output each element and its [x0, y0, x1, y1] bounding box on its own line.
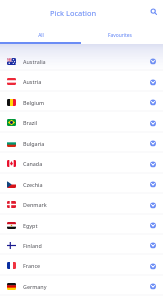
staticText: Germany [23, 283, 47, 290]
button[interactable]: Brazil [0, 112, 163, 133]
button[interactable]: Egypt [0, 215, 163, 235]
button[interactable]: Expand Bulgaria [149, 139, 157, 147]
button[interactable]: France [0, 255, 163, 276]
button[interactable]: Denmark [0, 194, 163, 215]
button[interactable]: Expand Brazil [149, 119, 157, 127]
staticText: All [38, 32, 44, 39]
button[interactable]: Expand France [149, 262, 157, 270]
button[interactable]: Expand Finland [149, 241, 157, 249]
button[interactable]: Favourites [81, 26, 163, 42]
staticText: Australia [23, 58, 46, 65]
staticText: Canada [23, 160, 43, 167]
button[interactable]: Expand Egypt [149, 221, 157, 229]
button[interactable]: Expand Denmark [149, 201, 157, 209]
button[interactable]: Expand Czechia [149, 180, 157, 188]
staticText: Austria [23, 78, 42, 85]
button[interactable]: Belgium [0, 92, 163, 112]
button[interactable]: Austria [0, 71, 163, 92]
staticText: France [23, 262, 41, 269]
button[interactable]: Expand Austria [149, 78, 157, 86]
button[interactable]: Australia [0, 51, 163, 71]
button[interactable]: Finland [0, 235, 163, 255]
staticText: Denmark [23, 201, 47, 208]
staticText: Favourites [108, 32, 132, 39]
staticText: Pick Location [50, 8, 97, 18]
staticText: Finland [23, 242, 42, 249]
button[interactable]: Canada [0, 153, 163, 174]
staticText: Bulgaria [23, 140, 45, 147]
staticText: Egypt [23, 222, 38, 229]
staticText: Brazil [23, 119, 38, 126]
staticText: Belgium [23, 99, 45, 106]
button[interactable]: Germany [0, 276, 163, 296]
button[interactable]: Search [147, 6, 161, 20]
button[interactable]: Expand Australia [149, 57, 157, 65]
staticText: Czechia [23, 181, 43, 188]
button[interactable]: Expand Belgium [149, 98, 157, 106]
button[interactable]: Czechia [0, 174, 163, 194]
button[interactable]: Bulgaria [0, 133, 163, 153]
button[interactable]: Expand Germany [149, 282, 157, 290]
button[interactable]: Expand Canada [149, 160, 157, 168]
button[interactable]: All [0, 26, 81, 42]
